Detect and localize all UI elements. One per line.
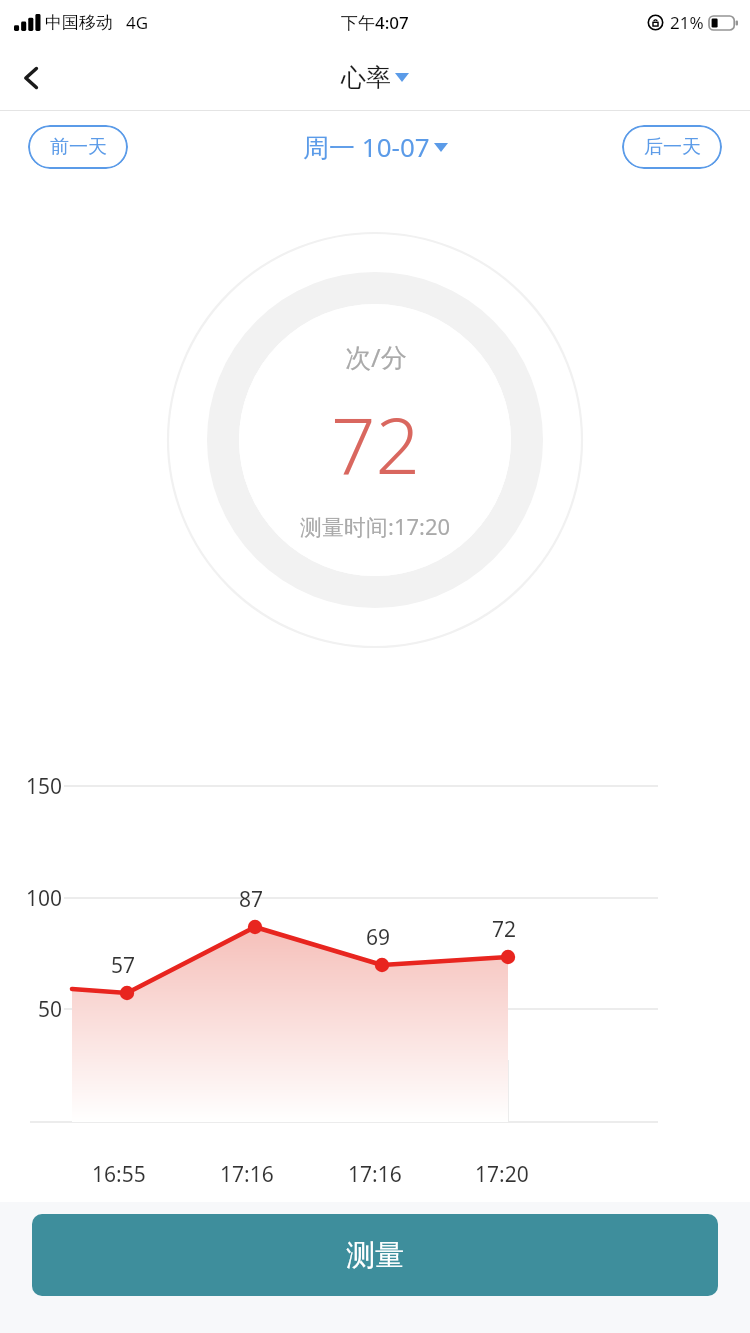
button[interactable]: 前一天 [28,125,128,169]
button[interactable]: 周一 10-07 [303,129,448,165]
staticText: 下午4:07 [341,11,409,34]
staticText: 测量时间:17:20 [300,511,451,541]
staticText: 测量 [346,1237,404,1274]
staticText: 周一 10-07 [303,129,430,165]
staticText: 次/分 [345,339,407,375]
staticText: 50 [38,995,63,1024]
staticText: 中国移动 [45,12,113,33]
staticText: 72 [492,915,517,944]
staticText: 前一天 [50,135,107,159]
staticText: 16:55 [92,1160,146,1189]
staticText: 心率 [341,62,391,93]
staticText: 87 [239,885,264,914]
staticText: 100 [26,884,63,913]
staticText: 17:20 [475,1160,529,1189]
button[interactable]: Back [0,46,64,110]
staticText: 17:16 [348,1160,402,1189]
staticText: 后一天 [644,135,701,159]
staticText: 72 [331,391,421,497]
button[interactable]: 测量 [32,1214,718,1296]
staticText: 21% [670,11,704,34]
button[interactable]: 后一天 [622,125,722,169]
button[interactable]: 心率 [341,62,409,93]
staticText: 57 [111,951,136,980]
staticText: 150 [26,772,63,801]
staticText: 4G [126,11,149,34]
staticText: 17:16 [220,1160,274,1189]
staticText: 69 [366,923,391,952]
